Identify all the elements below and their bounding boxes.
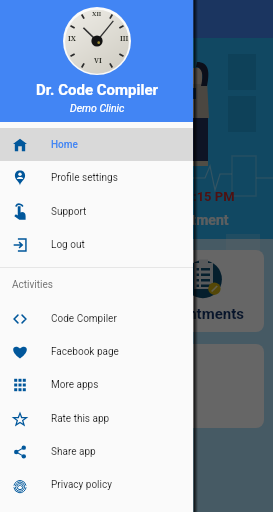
staticText: XII [92,10,102,18]
staticText: Facebook page [51,346,119,358]
staticText: IX [68,34,76,44]
button[interactable]: Profile settings [0,161,193,194]
staticText: Log out [51,239,85,251]
staticText: Share app [51,446,96,458]
staticText: Today, 3:15 PM [145,189,235,204]
staticText: Rate this app [51,413,110,425]
staticText: Home [51,139,78,151]
button[interactable]: Share app [0,435,193,468]
staticText: III [120,34,129,44]
button[interactable]: Log out [0,228,193,261]
staticText: Appointments [149,305,244,323]
staticText: Privacy policy [51,479,112,491]
staticText: Code Compiler [51,313,117,325]
staticText: Dr. Code Compiler [36,81,158,99]
button[interactable]: Privacy policy [0,468,193,501]
button[interactable]: Rate this app [0,402,193,435]
button[interactable]: Home [0,128,193,161]
staticText: Demo Clinic [70,102,125,114]
button[interactable]: Facebook page [0,335,193,368]
button[interactable]: Support [0,195,193,228]
staticText: More apps [51,379,99,391]
button[interactable]: Code Compiler [0,302,193,335]
staticText: Activities [12,279,53,291]
staticText: Profile settings [51,172,118,184]
staticText: VI [94,56,102,66]
staticText: Next appointment [116,212,229,228]
staticText: Support [51,206,87,218]
button[interactable]: More apps [0,368,193,401]
